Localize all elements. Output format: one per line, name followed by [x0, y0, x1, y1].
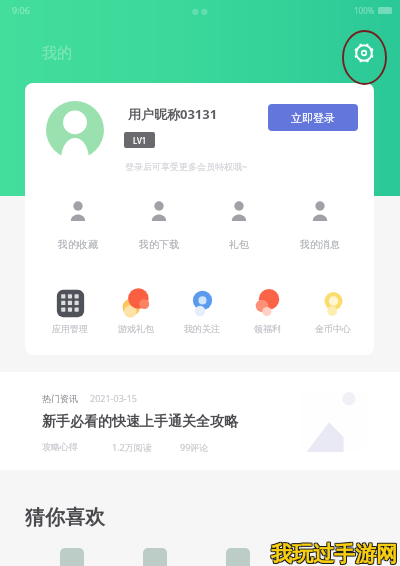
button[interactable]: 领福利 — [244, 288, 290, 334]
button[interactable]: 我的收藏 — [47, 201, 109, 251]
button[interactable]: 我的关注 — [179, 288, 225, 334]
staticText: 应用管理 — [52, 323, 88, 334]
staticText: 新手必看的快速上手通关全攻略 — [42, 413, 238, 431]
staticText: 我的消息 — [300, 238, 340, 251]
staticText: 猜你喜欢 — [25, 505, 105, 530]
staticText: 我玩过手游网 — [271, 540, 397, 566]
button[interactable] — [226, 548, 250, 566]
staticText: 我玩过手游网 — [272, 540, 398, 566]
staticText: 我的下载 — [139, 238, 179, 251]
staticText: 9:06 — [12, 4, 30, 16]
staticText: 99评论 — [180, 441, 209, 453]
staticText: 我玩过手游网 — [272, 541, 398, 566]
button[interactable]: 我的消息 — [289, 201, 351, 251]
staticText: 我玩过手游网 — [270, 540, 396, 566]
staticText: 我的关注 — [184, 323, 220, 334]
staticText: 我的收藏 — [58, 238, 98, 251]
staticText: 1.2万阅读 — [112, 441, 152, 453]
button[interactable]: 应用管理 — [47, 288, 93, 334]
button[interactable] — [143, 548, 167, 566]
staticText: 我玩过手游网 — [272, 542, 398, 566]
button[interactable]: 金币中心 — [310, 288, 356, 334]
staticText: 热门资讯 — [42, 393, 78, 404]
staticText: 立即登录 — [291, 111, 335, 125]
staticText: 100% — [354, 5, 375, 16]
staticText: 我玩过手游网 — [271, 542, 397, 566]
button[interactable] — [60, 548, 84, 566]
staticText: 攻略心得 — [42, 441, 78, 452]
staticText: 游戏礼包 — [118, 323, 154, 334]
staticText: LV1 — [133, 135, 147, 146]
button[interactable]: 立即登录 — [268, 104, 358, 131]
staticText: 我玩过手游网 — [270, 541, 396, 566]
staticText: ● ● — [192, 5, 209, 16]
staticText: 我的 — [42, 44, 72, 63]
button[interactable]: 游戏礼包 — [113, 288, 159, 334]
staticText: 礼包 — [229, 238, 249, 251]
button[interactable]: 礼包 — [208, 201, 270, 251]
staticText: 2021-03-15 — [90, 392, 137, 404]
staticText: 我玩过手游网 — [270, 542, 396, 566]
staticText: 领福利 — [254, 323, 281, 334]
staticText: 登录后可享受更多会员特权哦~ — [125, 160, 248, 172]
button[interactable]: Settings — [351, 40, 377, 66]
staticText: 用户昵称03131 — [128, 105, 218, 123]
button[interactable]: 我的下载 — [128, 201, 190, 251]
staticText: 我玩过手游网 — [271, 541, 397, 566]
staticText: 金币中心 — [315, 323, 351, 334]
